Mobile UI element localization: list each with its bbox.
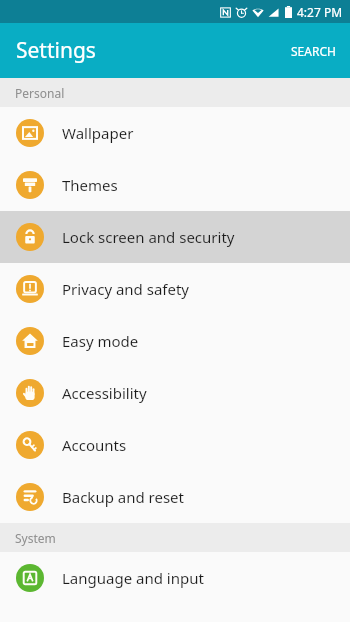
button[interactable]: Backup and reset (0, 471, 350, 523)
button[interactable]: Language and input (0, 552, 350, 604)
staticText: Settings (16, 36, 96, 65)
staticText: 4:27 PM (297, 4, 343, 20)
button[interactable]: Lock screen and security (0, 211, 350, 263)
staticText: Themes (62, 175, 118, 195)
other: Backup and reset (16, 483, 44, 511)
other: Themes (16, 171, 44, 199)
staticText: Wallpaper (62, 123, 134, 143)
staticText: Privacy and safety (62, 279, 190, 299)
button[interactable]: Wallpaper (0, 107, 350, 159)
staticText: Accounts (62, 435, 127, 455)
other: Easy mode (16, 327, 44, 355)
staticText: Language and input (62, 568, 204, 588)
button[interactable]: Themes (0, 159, 350, 211)
staticText: SEARCH (291, 43, 336, 59)
other: Privacy and safety (16, 275, 44, 303)
other: Lock screen and security (16, 223, 44, 251)
staticText: Backup and reset (62, 487, 184, 507)
button[interactable]: Easy mode (0, 315, 350, 367)
staticText: Lock screen and security (62, 227, 235, 247)
staticText: System (15, 530, 56, 546)
other: Accessibility (16, 379, 44, 407)
button[interactable]: Privacy and safety (0, 263, 350, 315)
staticText: Accessibility (62, 383, 147, 403)
staticText: Easy mode (62, 331, 139, 351)
button[interactable]: SEARCH (277, 31, 350, 71)
other: Language and input (16, 564, 44, 592)
staticText: Personal (15, 85, 65, 101)
other: Accounts (16, 431, 44, 459)
other: Wallpaper (16, 119, 44, 147)
button[interactable]: Accessibility (0, 367, 350, 419)
button[interactable]: Accounts (0, 419, 350, 471)
